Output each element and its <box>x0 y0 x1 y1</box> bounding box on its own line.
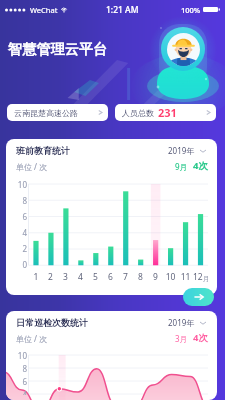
staticText: 2019年 <box>168 317 195 328</box>
staticText: 4 <box>16 227 27 238</box>
staticText: WeChat <box>30 5 58 15</box>
staticText: 8 <box>133 271 148 283</box>
staticText: 11 <box>178 271 193 283</box>
staticText: 231 <box>158 105 177 120</box>
staticText: 10 <box>163 271 178 283</box>
staticText: 6 <box>16 211 27 222</box>
staticText: 4 <box>73 271 88 283</box>
staticText: 8 <box>16 363 27 374</box>
staticText: 人员总数 <box>122 108 154 118</box>
staticText: 2 <box>43 271 58 283</box>
staticText: 100% <box>181 5 201 15</box>
staticText: 单位 / 次 <box>16 161 48 172</box>
staticText: 3月 <box>175 333 188 344</box>
button[interactable]: 人员总数 <box>115 104 216 121</box>
staticText: 2019年 <box>168 145 195 156</box>
staticText: 9月 <box>175 161 188 172</box>
staticText: 7 <box>118 271 133 283</box>
staticText: 日常巡检次数统计 <box>16 317 88 328</box>
staticText: 智慧管理云平台 <box>8 41 108 59</box>
staticText: 1:21 AM <box>106 4 139 16</box>
staticText: 4次 <box>193 159 208 172</box>
button[interactable]: 2019年 <box>166 316 208 329</box>
staticText: 月 <box>203 275 208 283</box>
staticText: 4 <box>16 389 27 395</box>
button[interactable]: 云南昆楚高速公路 <box>7 104 108 121</box>
staticText: 班前教育统计 <box>16 145 70 156</box>
staticText: 6 <box>103 271 118 283</box>
staticText: 6 <box>16 376 27 387</box>
staticText: 4次 <box>193 331 208 344</box>
staticText: 单位 / 次 <box>16 333 48 344</box>
button[interactable]: User profile <box>161 27 205 71</box>
staticText: 2 <box>16 243 27 254</box>
staticText: 5 <box>88 271 103 283</box>
staticText: 10 <box>16 350 27 361</box>
staticText: 10 <box>16 179 27 190</box>
staticText: 云南昆楚高速公路 <box>14 108 78 118</box>
staticText: 0 <box>16 259 27 270</box>
staticText: 1 <box>29 271 43 283</box>
button[interactable]: Next chart <box>183 288 214 306</box>
staticText: 3 <box>58 271 73 283</box>
staticText: 12 <box>193 271 203 283</box>
staticText: 9 <box>148 271 163 283</box>
button[interactable]: 2019年 <box>166 144 208 157</box>
staticText: 8 <box>16 195 27 206</box>
